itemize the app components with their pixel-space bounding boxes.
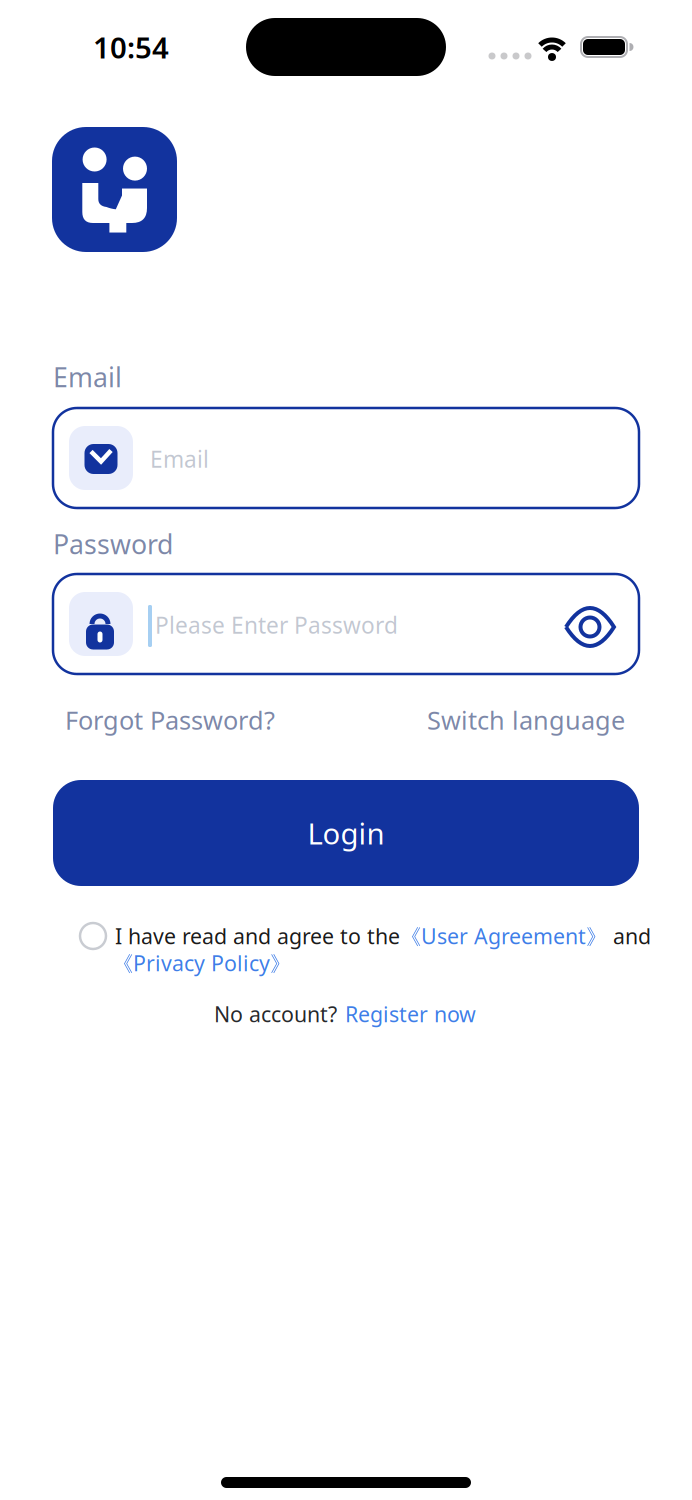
staticText: Please Enter Password [155,610,398,640]
staticText: Password [53,526,173,562]
button[interactable]: Show password [53,574,639,674]
button[interactable]: Login [53,780,639,886]
staticText: Register now [345,1000,476,1028]
button[interactable]: Switch language [427,703,625,737]
button[interactable]: Register now [345,1000,476,1028]
staticText: Email [53,359,122,395]
button[interactable]: 《User Agreement》 [400,922,607,950]
staticText: Email [150,444,209,474]
staticText: 《User Agreement》 [400,922,607,950]
staticText: Forgot Password? [65,703,275,737]
staticText: Switch language [427,703,625,737]
button[interactable]: 《Privacy Policy》 [112,949,291,977]
button[interactable]: Forgot Password? [65,703,275,737]
button[interactable]: Password [53,574,639,674]
button[interactable]: Agree to terms [80,923,106,949]
button[interactable]: Email [53,408,639,508]
staticText: Login [307,813,384,852]
staticText: 10:54 [93,27,169,66]
staticText: 《Privacy Policy》 [112,949,291,977]
staticText: I have read and agree to the [115,922,400,950]
staticText: and [607,922,651,950]
staticText: No account? [214,1000,337,1028]
